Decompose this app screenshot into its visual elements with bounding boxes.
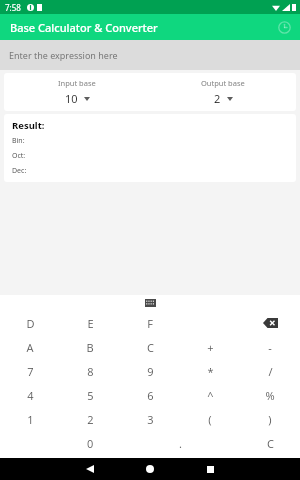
button[interactable]: Enter the expression here [0, 40, 300, 70]
button[interactable]: . [150, 431, 210, 455]
button[interactable]: ) [240, 407, 300, 431]
button[interactable]: 9 [120, 359, 180, 383]
button[interactable]: ^ [180, 383, 240, 407]
button[interactable]: + [180, 335, 240, 359]
button[interactable]: C [120, 335, 180, 359]
button[interactable]: Show keyboard [140, 295, 160, 311]
staticText: Bin: [12, 136, 25, 146]
button[interactable]: Output base [150, 73, 296, 111]
staticText: ^ [207, 388, 214, 403]
staticText: C [267, 436, 274, 451]
button[interactable]: 8 [60, 359, 120, 383]
button[interactable]: D [0, 311, 60, 335]
staticText: ) [268, 412, 272, 427]
button[interactable]: History [274, 17, 294, 37]
staticText: 7 [27, 364, 34, 379]
button[interactable]: / [240, 359, 300, 383]
staticText: C [147, 340, 154, 355]
button[interactable]: 7 [0, 359, 60, 383]
button[interactable]: Back [60, 458, 120, 480]
button[interactable]: 1 [0, 407, 60, 431]
staticText: 4 [27, 388, 34, 403]
staticText: Input base [58, 78, 96, 88]
staticText: Oct: [12, 151, 26, 161]
button[interactable]: 2 [60, 407, 120, 431]
staticText: + [207, 340, 214, 355]
staticText: Result: [12, 119, 45, 132]
button[interactable]: Input base [4, 73, 150, 111]
staticText: 7:58 [5, 2, 21, 13]
button[interactable]: % [240, 383, 300, 407]
button[interactable]: C [240, 431, 300, 455]
staticText: Dec: [12, 166, 27, 176]
button[interactable]: F [120, 311, 180, 335]
staticText: 6 [147, 388, 154, 403]
staticText: 5 [87, 388, 94, 403]
button[interactable]: 5 [60, 383, 120, 407]
staticText: Base Calculator & Converter [10, 20, 158, 35]
staticText: 0 [87, 436, 94, 451]
button[interactable]: Recent apps [180, 458, 240, 480]
staticText: Output base [201, 78, 245, 88]
button[interactable]: E [60, 311, 120, 335]
staticText: D [26, 316, 35, 331]
button[interactable]: * [180, 359, 240, 383]
staticText: 1 [27, 412, 34, 427]
staticText: Enter the expression here [9, 49, 118, 61]
staticText: 10 [65, 91, 78, 106]
staticText: % [265, 388, 275, 403]
button[interactable]: 4 [0, 383, 60, 407]
staticText: ( [208, 412, 212, 427]
staticText: F [147, 316, 153, 331]
button[interactable]: ( [180, 407, 240, 431]
staticText: 8 [87, 364, 94, 379]
button[interactable]: A [0, 335, 60, 359]
staticText: 2 [87, 412, 94, 427]
staticText: 2 [214, 91, 221, 106]
button[interactable]: Home [120, 458, 180, 480]
button[interactable]: Backspace [240, 311, 300, 335]
button[interactable]: - [240, 335, 300, 359]
button[interactable]: 6 [120, 383, 180, 407]
staticText: A [26, 340, 34, 355]
staticText: 3 [147, 412, 154, 427]
button[interactable]: 0 [60, 431, 120, 455]
button[interactable]: 3 [120, 407, 180, 431]
staticText: B [86, 340, 94, 355]
staticText: E [87, 316, 94, 331]
button[interactable]: B [60, 335, 120, 359]
staticText: . [179, 436, 182, 451]
staticText: - [268, 340, 272, 355]
staticText: 9 [147, 364, 154, 379]
staticText: * [207, 364, 214, 379]
staticText: / [268, 364, 273, 379]
